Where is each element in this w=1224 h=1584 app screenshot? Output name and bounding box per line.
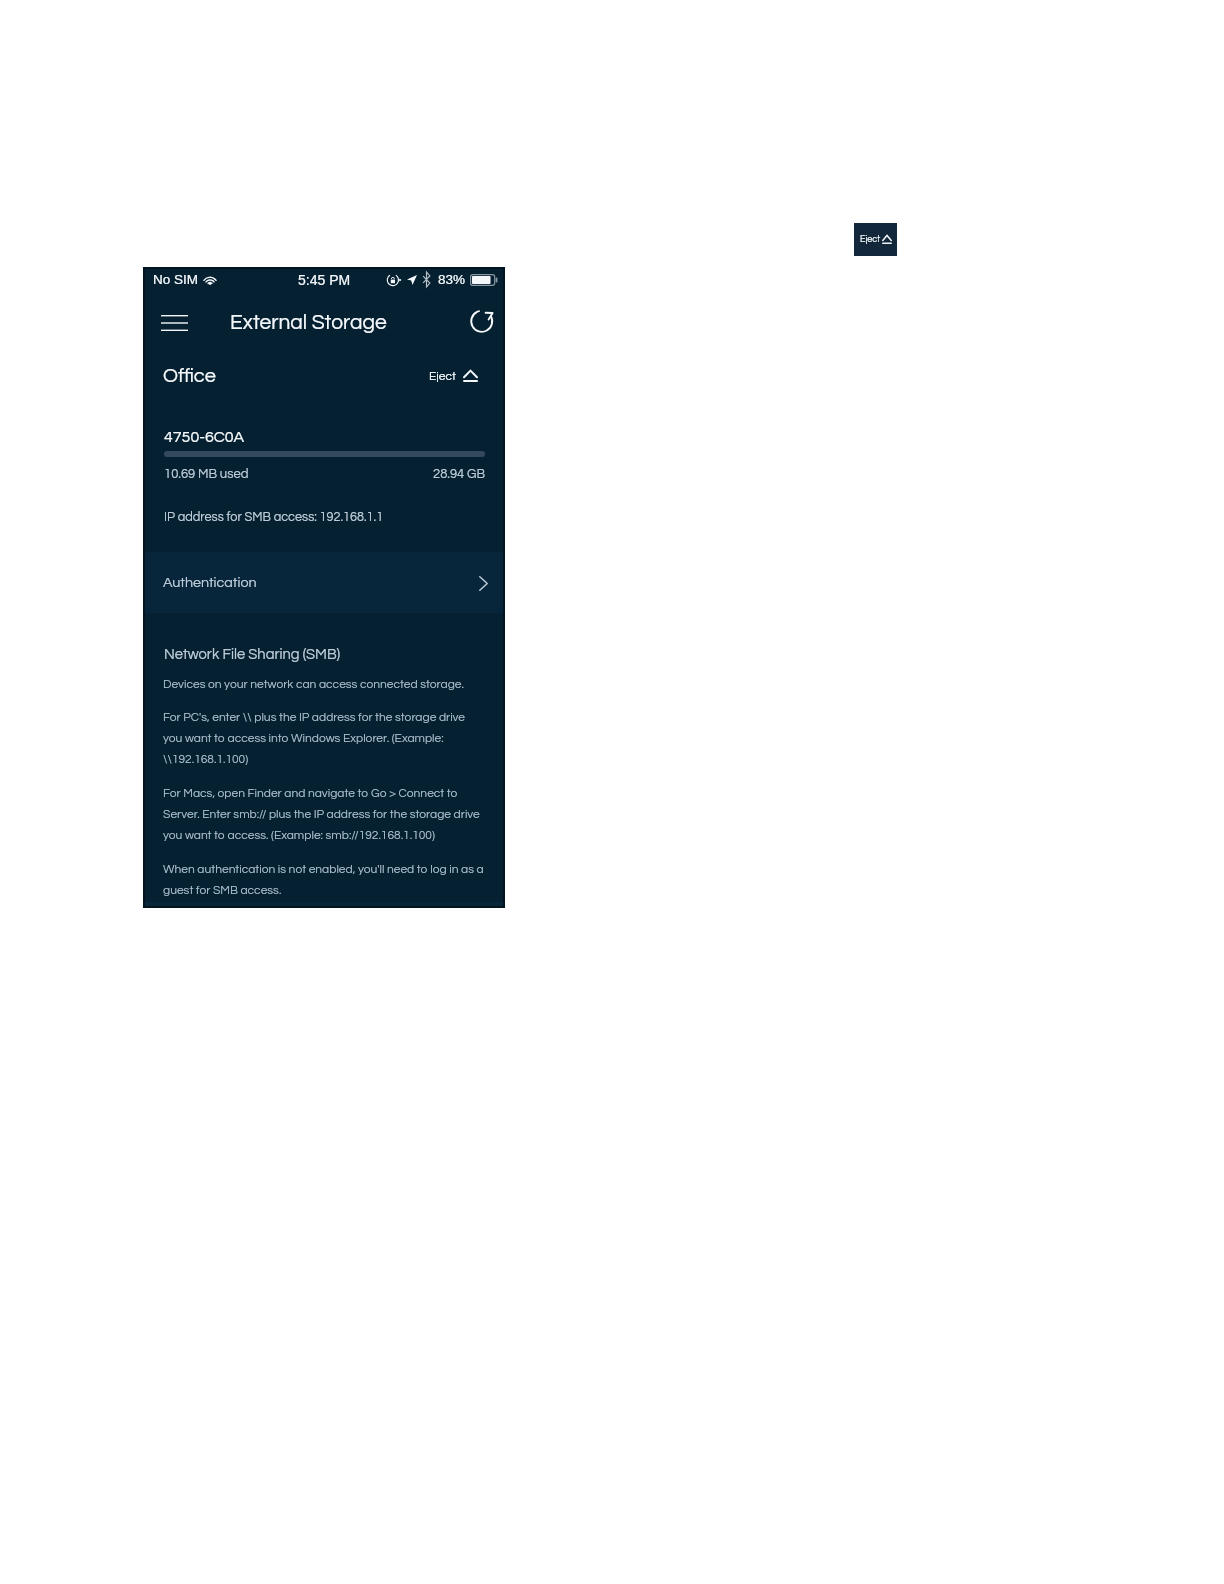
button[interactable]: Eject [429,364,478,388]
staticText: Office [163,366,216,387]
staticText: 28.94 GB [144,467,485,480]
staticText: External Storage [230,312,387,334]
staticText: 83% [438,272,466,287]
staticText: Eject [429,370,456,382]
staticText: 10.69 MB used [164,467,249,480]
staticText: For Macs, open Finder and navigate to Go… [163,787,485,842]
staticText: Authentication [163,575,257,590]
staticText: 5:45 PM [298,272,351,288]
staticText: IP address for SMB access: 192.168.1.1 [164,511,384,524]
button[interactable]: Eject [854,223,897,256]
staticText: No SIM [153,272,199,287]
staticText: 4750-6C0A [164,429,245,445]
button[interactable]: Menu [159,311,189,335]
staticText: Network File Sharing (SMB) [164,647,341,662]
staticText: For PC's, enter \⁠\ plus the IP address … [163,711,485,766]
button[interactable]: Authentication [144,552,504,613]
staticText: Eject [860,235,881,244]
button[interactable]: Refresh [469,308,495,334]
staticText: When authentication is not enabled, you'… [163,863,485,897]
staticText: Devices on your network can access conne… [163,678,464,690]
